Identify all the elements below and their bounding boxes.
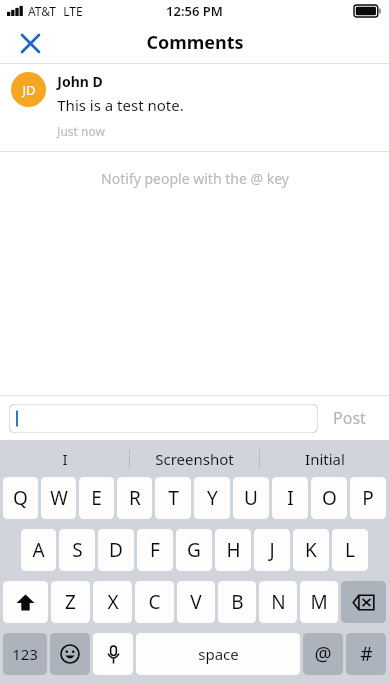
button[interactable]: JD <box>0 64 389 151</box>
button[interactable]: P <box>350 477 386 519</box>
staticText: C <box>148 589 161 615</box>
button[interactable]: I <box>272 477 308 519</box>
staticText: V <box>190 589 202 615</box>
button[interactable]: Y <box>194 477 230 519</box>
staticText: @ <box>314 641 332 667</box>
staticText: Notify people with the @ key <box>101 169 289 188</box>
staticText: N <box>271 589 286 615</box>
staticText: L <box>345 537 355 563</box>
staticText: W <box>50 485 68 511</box>
button[interactable]: T <box>155 477 191 519</box>
button[interactable]: H <box>215 529 251 571</box>
button[interactable]: R <box>117 477 152 519</box>
button[interactable]: space <box>136 633 300 675</box>
staticText: D <box>109 537 123 563</box>
button[interactable]: F <box>137 529 173 571</box>
button[interactable]: W <box>41 477 76 519</box>
button[interactable]: Z <box>51 581 90 623</box>
staticText: H <box>226 537 241 563</box>
button[interactable]: Screenshot <box>130 440 259 477</box>
button[interactable]: Initial <box>260 440 389 477</box>
button[interactable]: G <box>176 529 212 571</box>
staticText: B <box>231 589 244 615</box>
staticText: # <box>360 641 373 667</box>
button[interactable]: D <box>98 529 134 571</box>
staticText: K <box>305 537 317 563</box>
button[interactable]: Dictation <box>93 633 133 675</box>
button[interactable]: E <box>79 477 114 519</box>
button[interactable]: X <box>93 581 132 623</box>
staticText: P <box>362 485 374 511</box>
staticText: Comments <box>146 30 244 55</box>
button[interactable]: J <box>254 529 290 571</box>
button[interactable]: V <box>177 581 215 623</box>
staticText: AT&T <box>28 3 56 19</box>
button[interactable]: @ <box>303 633 343 675</box>
button[interactable]: M <box>300 581 338 623</box>
staticText: E <box>91 485 102 511</box>
button[interactable]: O <box>311 477 347 519</box>
button[interactable]: Shift <box>3 581 48 623</box>
button[interactable]: 123 <box>3 633 47 675</box>
staticText: I <box>62 449 68 469</box>
staticText: Initial <box>305 449 345 469</box>
staticText: S <box>72 537 83 563</box>
button[interactable]: Q <box>3 477 38 519</box>
button[interactable]: I <box>0 440 129 477</box>
staticText: Z <box>65 589 76 615</box>
button[interactable]: C <box>135 581 174 623</box>
staticText: U <box>244 485 258 511</box>
staticText: Y <box>207 485 218 511</box>
staticText: LTE <box>63 3 83 19</box>
staticText: space <box>198 644 239 664</box>
staticText: 12:56 PM <box>166 2 223 20</box>
staticText: G <box>187 537 201 563</box>
button[interactable]: Backspace <box>341 581 386 623</box>
staticText: 123 <box>12 644 38 664</box>
button[interactable]: Emoji <box>50 633 90 675</box>
staticText: M <box>310 589 328 615</box>
button[interactable]: Close <box>10 23 50 63</box>
staticText: This is a test note. <box>57 95 184 115</box>
button[interactable]: Post <box>318 398 380 438</box>
button[interactable]: U <box>233 477 269 519</box>
staticText: Screenshot <box>155 449 234 469</box>
staticText: F <box>150 537 160 563</box>
staticText: A <box>32 537 45 563</box>
button[interactable]: S <box>59 529 95 571</box>
button[interactable]: L <box>332 529 368 571</box>
button[interactable]: B <box>218 581 256 623</box>
staticText: JD <box>22 81 36 99</box>
staticText: R <box>129 485 141 511</box>
button[interactable]: K <box>293 529 329 571</box>
staticText: John D <box>57 72 103 91</box>
staticText: Q <box>13 485 28 511</box>
staticText: I <box>287 485 294 511</box>
button[interactable]: A <box>21 529 56 571</box>
staticText: O <box>322 485 337 511</box>
staticText: T <box>168 485 179 511</box>
button[interactable]: # <box>346 633 386 675</box>
button[interactable]: N <box>259 581 297 623</box>
staticText: Just now <box>57 123 105 139</box>
button[interactable] <box>9 404 318 433</box>
staticText: X <box>107 589 119 615</box>
staticText: J <box>269 537 275 563</box>
staticText: Post <box>333 407 366 429</box>
